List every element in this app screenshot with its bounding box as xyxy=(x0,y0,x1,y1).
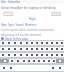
button[interactable]: Key xyxy=(18,53,24,57)
button[interactable]: Key xyxy=(0,53,6,57)
button[interactable]: Key xyxy=(24,53,29,57)
button[interactable]: Key xyxy=(0,41,6,45)
button[interactable]: Shift xyxy=(0,59,9,63)
button[interactable]: Like xyxy=(1,37,4,40)
button[interactable]: Key xyxy=(51,59,56,63)
button[interactable]: Back xyxy=(1,0,6,4)
button[interactable]: Enter xyxy=(56,65,64,71)
staticText: Great headline for laptop or desktop xyxy=(1,6,56,10)
button[interactable]: Key xyxy=(44,47,49,51)
button[interactable]: Key xyxy=(59,53,64,57)
button[interactable]: Emoji xyxy=(8,65,14,71)
button[interactable]: Key xyxy=(36,59,41,63)
button[interactable]: Key xyxy=(49,53,54,57)
button[interactable]: Key xyxy=(34,53,39,57)
button[interactable]: Key xyxy=(29,41,34,45)
button[interactable]: Key xyxy=(24,41,29,45)
staticText: adipiscing elit sed do eiusmod xyxy=(1,33,41,37)
button[interactable]: Key xyxy=(54,41,59,45)
staticText: Reply xyxy=(5,13,12,16)
staticText: Send xyxy=(53,13,59,16)
staticText: New Topic Search Members xyxy=(1,23,37,27)
button[interactable]: Key xyxy=(26,59,31,63)
button[interactable]: Backspace xyxy=(56,59,64,63)
button[interactable]: Key xyxy=(6,41,12,45)
button[interactable]: Key xyxy=(49,47,54,51)
button[interactable]: Key xyxy=(59,41,64,45)
button[interactable]: Key xyxy=(41,59,46,63)
button[interactable]: Key xyxy=(46,59,51,63)
staticText: Reply to this topic xyxy=(5,37,29,40)
button[interactable]: Key xyxy=(39,47,44,51)
button[interactable]: Key xyxy=(24,47,29,51)
button[interactable]: Key xyxy=(9,59,15,63)
staticText: Reply xyxy=(29,17,36,21)
button[interactable]: Key xyxy=(44,53,49,57)
button[interactable]: Key xyxy=(34,41,39,45)
button[interactable]: Key xyxy=(18,41,24,45)
button[interactable]: Key xyxy=(31,59,36,63)
button[interactable]: Key xyxy=(39,53,44,57)
button[interactable]: Symbols xyxy=(0,65,8,71)
button[interactable]: Key xyxy=(6,47,12,51)
button[interactable]: Key xyxy=(12,41,18,45)
button[interactable]: Key xyxy=(49,41,54,45)
staticText: Info xyxy=(1,0,6,4)
button[interactable]: Key xyxy=(21,59,26,63)
button[interactable]: Key xyxy=(54,47,59,51)
button[interactable]: Key xyxy=(54,53,59,57)
staticText: Subscribe xyxy=(8,0,20,4)
button[interactable]: Key xyxy=(29,53,34,57)
button[interactable]: Key xyxy=(34,47,39,51)
button[interactable]: Period xyxy=(50,65,56,71)
button[interactable]: Key xyxy=(6,53,12,57)
button[interactable]: Reply xyxy=(3,12,13,16)
button[interactable]: Key xyxy=(12,53,18,57)
button[interactable]: Key xyxy=(0,47,6,51)
button[interactable]: Key xyxy=(44,41,49,45)
button[interactable]: Key xyxy=(39,41,44,45)
button[interactable]: Key xyxy=(29,47,34,51)
button[interactable]: Key xyxy=(15,59,21,63)
button[interactable]: Subscribe xyxy=(8,0,20,4)
button[interactable]: Key xyxy=(59,47,64,51)
button[interactable]: Key xyxy=(12,47,18,51)
button[interactable]: Send xyxy=(51,12,61,16)
staticText: Lorem ipsum dolor sit amet consectetur xyxy=(1,28,54,32)
button[interactable]: Key xyxy=(18,47,24,51)
